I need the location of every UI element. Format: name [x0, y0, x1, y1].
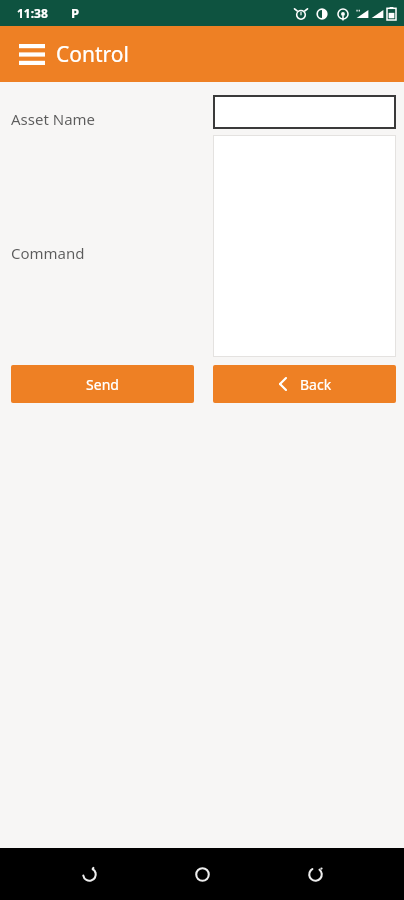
button[interactable]: Open navigation menu: [10, 32, 54, 76]
staticText: 11:38: [17, 5, 48, 21]
staticText: Send: [86, 375, 119, 394]
button[interactable]: Asset name input: [213, 95, 396, 129]
staticText: Control: [56, 40, 129, 69]
staticText: P: [71, 4, 80, 22]
button[interactable]: Command list: [213, 135, 396, 357]
button[interactable]: Send: [11, 365, 194, 403]
button[interactable]: Back: [213, 365, 396, 403]
button[interactable]: Back: [65, 850, 113, 898]
staticText: Asset Name: [11, 109, 96, 129]
staticText: Command: [11, 243, 85, 263]
staticText: Back: [300, 375, 332, 394]
button[interactable]: Home: [178, 850, 226, 898]
button[interactable]: Recent apps: [291, 850, 339, 898]
